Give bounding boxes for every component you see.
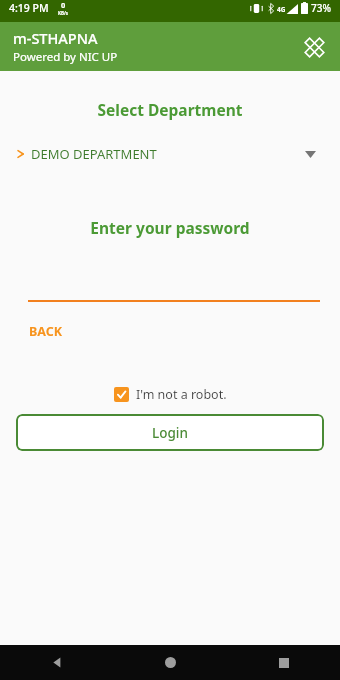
staticText: Powered by NIC UP: [13, 49, 118, 65]
staticText: DEMO DEPARTMENT: [31, 145, 157, 163]
staticText: 73%: [311, 1, 331, 15]
staticText: 0: [61, 0, 66, 10]
staticText: I'm not a robot.: [136, 386, 227, 403]
staticText: m-STHAPNA: [13, 28, 98, 48]
button[interactable]: Close: [296, 29, 332, 65]
staticText: Enter your password: [0, 217, 340, 238]
button[interactable]: BACK: [28, 321, 64, 342]
button[interactable]: Back: [0, 645, 114, 680]
button[interactable]: I'm not a robot.: [114, 386, 227, 403]
staticText: Login: [152, 424, 188, 442]
button[interactable]: Recent apps: [227, 645, 340, 680]
button[interactable]: DEMO DEPARTMENT: [0, 141, 340, 167]
button[interactable]: Login: [16, 414, 324, 451]
staticText: KB/s: [58, 10, 69, 16]
staticText: Select Department: [0, 99, 340, 120]
button[interactable]: [28, 284, 320, 302]
button[interactable]: Home: [114, 645, 227, 680]
staticText: BACK: [29, 323, 63, 340]
staticText: 4G: [277, 5, 286, 14]
staticText: 4:19 PM: [9, 1, 49, 15]
